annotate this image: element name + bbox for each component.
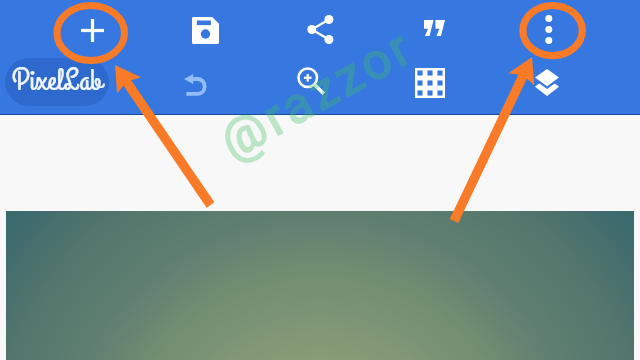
button[interactable]: More options bbox=[525, 5, 573, 53]
button[interactable]: Layers bbox=[523, 58, 571, 106]
button[interactable]: Add bbox=[68, 6, 116, 54]
button[interactable]: Zoom in bbox=[287, 57, 335, 105]
button[interactable]: Grid bbox=[406, 59, 454, 107]
button[interactable]: Quote bbox=[410, 4, 458, 52]
staticText: PixelLab bbox=[12, 60, 103, 102]
staticText: @razzor bbox=[210, 17, 425, 172]
button[interactable]: Save bbox=[181, 6, 229, 54]
button[interactable]: Undo bbox=[171, 60, 219, 108]
button[interactable]: Share bbox=[295, 5, 343, 53]
button[interactable]: PixelLab bbox=[5, 58, 109, 106]
